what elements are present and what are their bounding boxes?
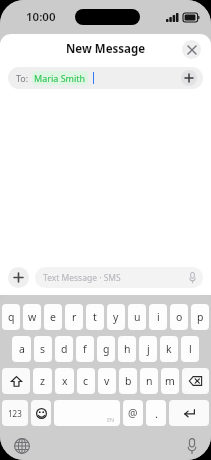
button[interactable]: Add attachment xyxy=(8,267,29,288)
staticText: p xyxy=(197,310,204,324)
staticText: k xyxy=(166,342,172,356)
button[interactable]: c xyxy=(77,368,95,394)
button[interactable]: Text Message · SMS xyxy=(35,267,203,288)
staticText: v xyxy=(104,374,110,388)
button[interactable]: u xyxy=(128,304,146,330)
staticText: n xyxy=(146,374,153,388)
button[interactable]: g xyxy=(97,336,115,362)
staticText: d xyxy=(61,342,68,356)
staticText: 10:00 xyxy=(26,9,56,25)
staticText: a xyxy=(19,342,25,356)
button[interactable]: a xyxy=(12,336,31,362)
button[interactable]: Shift xyxy=(2,368,30,394)
staticText: Text Message · SMS xyxy=(43,272,121,284)
other: Dictate xyxy=(189,272,196,283)
staticText: q xyxy=(8,310,15,324)
staticText: y xyxy=(113,310,119,324)
button[interactable]: q xyxy=(2,304,20,330)
button[interactable]: Backspace xyxy=(182,368,209,394)
button[interactable]: Add contact xyxy=(181,70,197,86)
button[interactable]: v xyxy=(98,368,116,394)
staticText: w xyxy=(28,310,37,324)
button[interactable]: e xyxy=(44,304,62,330)
button[interactable]: i xyxy=(149,304,167,330)
staticText: EN xyxy=(107,416,115,423)
button[interactable]: o xyxy=(170,304,188,330)
staticText: . xyxy=(155,406,158,421)
button[interactable]: l xyxy=(181,336,199,362)
button[interactable]: d xyxy=(55,336,73,362)
button[interactable]: k xyxy=(160,336,178,362)
staticText: m xyxy=(165,374,175,388)
staticText: e xyxy=(50,310,56,324)
staticText: @ xyxy=(128,406,138,420)
button[interactable]: To: xyxy=(8,67,203,89)
button[interactable]: n xyxy=(140,368,158,394)
button[interactable]: h xyxy=(118,336,136,362)
button[interactable]: m xyxy=(161,368,179,394)
staticText: g xyxy=(103,342,110,356)
staticText: s xyxy=(40,342,46,356)
staticText: i xyxy=(157,310,160,324)
button[interactable]: r xyxy=(65,304,83,330)
staticText: o xyxy=(176,310,183,324)
button[interactable]: j xyxy=(139,336,157,362)
button[interactable]: t xyxy=(86,304,104,330)
staticText: New Message xyxy=(66,41,146,57)
button[interactable]: z xyxy=(33,368,52,394)
button[interactable]: x xyxy=(55,368,74,394)
staticText: 123 xyxy=(8,408,22,419)
button[interactable]: b xyxy=(119,368,137,394)
staticText: c xyxy=(83,374,89,388)
button[interactable]: p xyxy=(191,304,209,330)
staticText: To: xyxy=(16,72,29,84)
staticText: r xyxy=(72,310,77,324)
button[interactable]: y xyxy=(107,304,125,330)
staticText: b xyxy=(125,374,132,388)
button[interactable]: 123 xyxy=(2,400,28,426)
button[interactable]: Close xyxy=(182,40,201,59)
button[interactable]: Voice input xyxy=(187,438,197,454)
button[interactable]: Emoji xyxy=(31,400,51,426)
button[interactable]: f xyxy=(76,336,94,362)
button[interactable]: w xyxy=(23,304,41,330)
staticText: Maria Smith xyxy=(34,72,86,84)
button[interactable]: . xyxy=(146,400,166,426)
button[interactable]: Change keyboard language xyxy=(14,438,30,454)
staticText: z xyxy=(40,374,45,388)
button[interactable]: @ xyxy=(123,400,143,426)
button[interactable]: Space xyxy=(54,400,120,426)
staticText: h xyxy=(124,342,131,356)
staticText: j xyxy=(147,342,150,356)
button[interactable]: Return xyxy=(169,400,209,426)
staticText: t xyxy=(93,310,97,324)
staticText: x xyxy=(62,374,68,388)
staticText: l xyxy=(189,342,192,356)
button[interactable]: s xyxy=(34,336,52,362)
staticText: u xyxy=(134,310,141,324)
staticText: f xyxy=(83,342,87,356)
